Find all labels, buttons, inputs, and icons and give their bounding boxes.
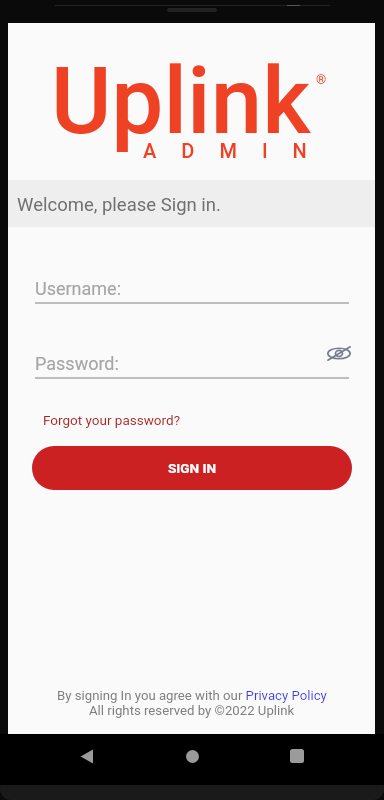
button[interactable]: Home	[163, 734, 221, 778]
staticText: Welcome, please Sign in.	[17, 194, 221, 216]
staticText: SIGN IN	[168, 460, 217, 476]
staticText: Uplink	[51, 47, 311, 155]
staticText: Username:	[35, 278, 122, 299]
staticText: ®	[316, 72, 327, 87]
button[interactable]: Forgot your password?	[35, 409, 189, 431]
button[interactable]: Recents	[268, 734, 326, 778]
button[interactable]: Show password	[319, 333, 359, 373]
staticText: Password:	[35, 353, 119, 374]
staticText: Forgot your password?	[43, 412, 181, 428]
button[interactable]: Back	[57, 734, 115, 778]
staticText: ADMIN	[143, 139, 332, 162]
button[interactable]: SIGN IN	[32, 446, 352, 490]
staticText: By signing In you agree with our Privacy…	[57, 688, 327, 703]
staticText: All rights reserved by ©2022 Uplink	[89, 703, 295, 718]
